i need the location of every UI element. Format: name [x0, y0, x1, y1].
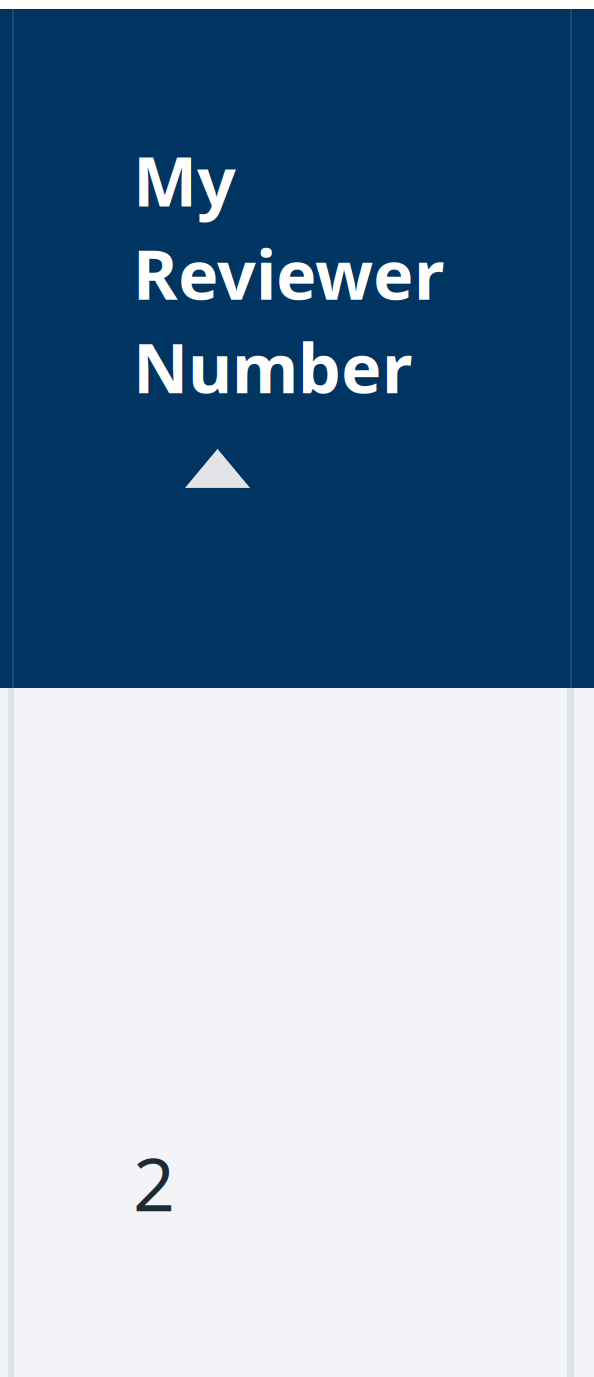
- button[interactable]: Scroll to top: [183, 446, 253, 492]
- staticText: 2: [133, 1134, 175, 1231]
- staticText: My Reviewer Number: [133, 135, 444, 412]
